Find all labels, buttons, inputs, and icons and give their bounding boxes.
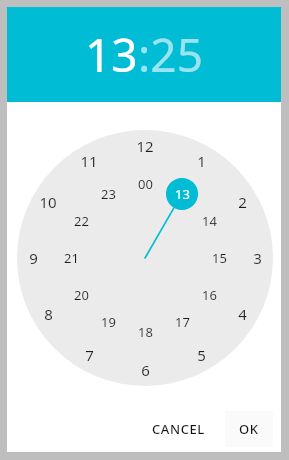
button[interactable]: 19 [93, 311, 123, 333]
staticText: 2 [238, 192, 247, 212]
button[interactable]: 7 [74, 344, 104, 366]
button[interactable]: 17 [167, 311, 197, 333]
staticText: 18 [138, 323, 153, 341]
staticText: 21 [64, 249, 79, 267]
staticText: 00 [138, 175, 153, 193]
button[interactable]: 5 [186, 344, 216, 366]
staticText: 8 [44, 304, 53, 324]
staticText: 6 [141, 360, 150, 380]
staticText: 5 [197, 345, 206, 365]
staticText: 1 [197, 151, 206, 171]
button[interactable]: 00 [130, 173, 160, 195]
button[interactable]: 13 [167, 183, 197, 205]
staticText: 17 [175, 313, 190, 331]
button[interactable]: :25 [138, 23, 203, 86]
staticText: 13 [85, 23, 138, 86]
staticText: 10 [39, 192, 57, 212]
staticText: 14 [202, 212, 217, 230]
staticText: 9 [29, 248, 38, 268]
button[interactable]: 3 [242, 247, 272, 269]
button[interactable]: 14 [194, 210, 224, 232]
button[interactable]: 13 [85, 23, 138, 86]
staticText: 7 [85, 345, 94, 365]
staticText: 23 [101, 185, 116, 203]
button[interactable]: 6 [130, 359, 160, 381]
button[interactable]: 22 [66, 210, 96, 232]
button[interactable]: 16 [194, 284, 224, 306]
staticText: 12 [136, 136, 154, 156]
staticText: 20 [74, 286, 89, 304]
button[interactable]: 20 [66, 284, 96, 306]
button[interactable]: 1 [186, 150, 216, 172]
button[interactable]: 4 [227, 303, 257, 325]
staticText: 16 [202, 286, 217, 304]
staticText: CANCEL [152, 420, 205, 438]
button[interactable]: 18 [130, 321, 160, 343]
button[interactable]: OK [225, 411, 273, 447]
button[interactable]: 8 [33, 303, 63, 325]
staticText: 15 [212, 249, 227, 267]
button[interactable]: 9 [18, 247, 48, 269]
staticText: 3 [253, 248, 262, 268]
staticText: 19 [101, 313, 116, 331]
staticText: 11 [80, 151, 98, 171]
button[interactable]: 12 [130, 135, 160, 157]
button[interactable]: CANCEL [138, 411, 219, 447]
staticText: :25 [138, 23, 203, 86]
button[interactable]: 11 [74, 150, 104, 172]
staticText: 13 [175, 185, 190, 203]
staticText: 4 [238, 304, 247, 324]
staticText: OK [239, 420, 259, 438]
button[interactable]: 15 [204, 247, 234, 269]
button[interactable]: 10 [33, 191, 63, 213]
staticText: 22 [74, 212, 89, 230]
button[interactable]: 21 [56, 247, 86, 269]
button[interactable]: 23 [93, 183, 123, 205]
button[interactable]: 2 [227, 191, 257, 213]
